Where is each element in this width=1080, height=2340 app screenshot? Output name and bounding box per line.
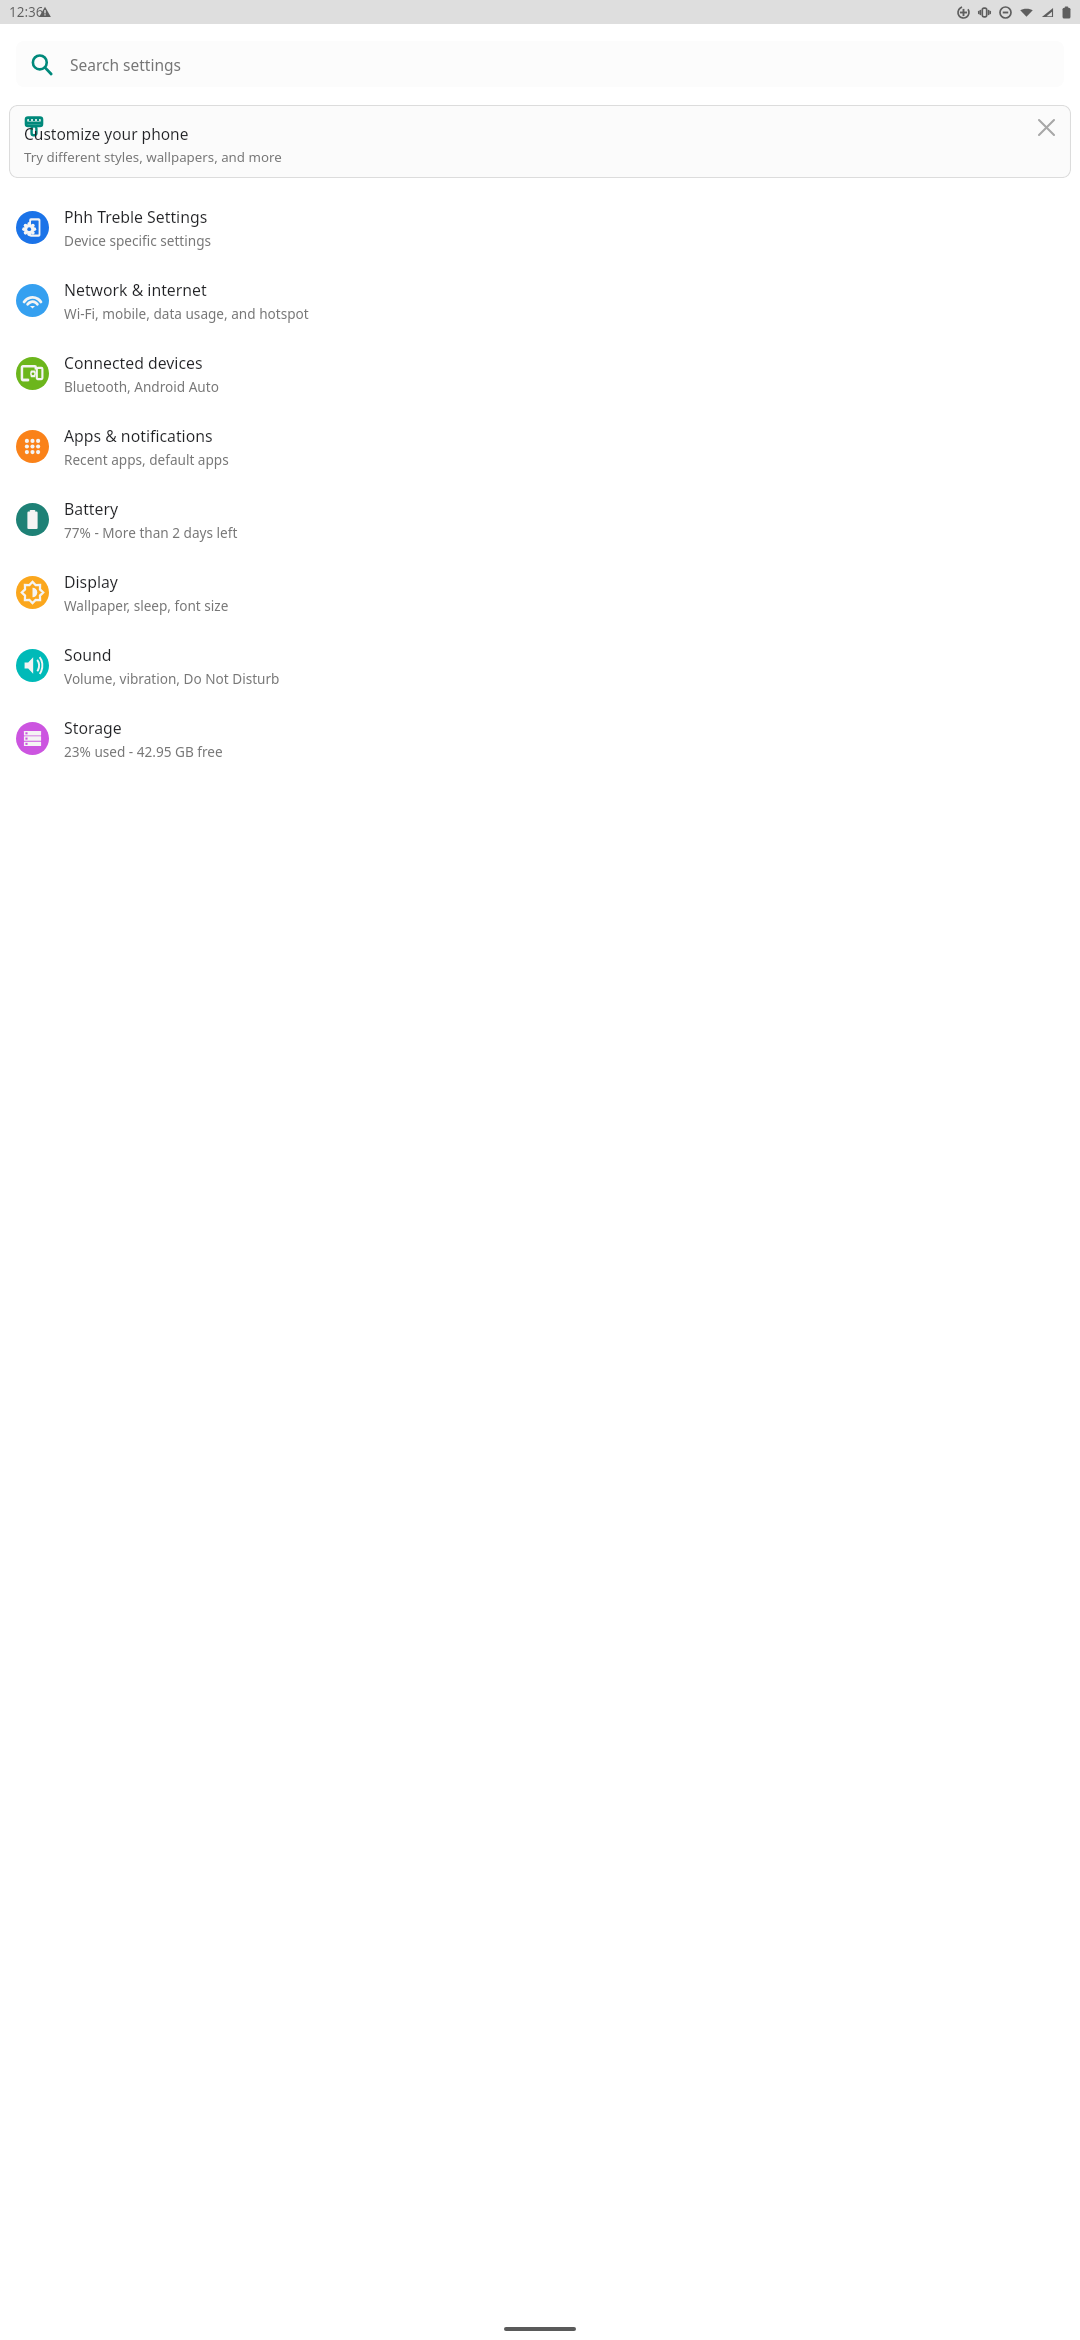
staticText: Volume, vibration, Do Not Disturb — [64, 669, 280, 688]
staticText: Sound — [64, 644, 112, 666]
button[interactable]: Dismiss suggestion — [9, 105, 1071, 178]
staticText: Search settings — [70, 54, 181, 75]
button[interactable]: Search settings — [16, 41, 1064, 87]
staticText: Try different styles, wallpapers, and mo… — [24, 148, 282, 166]
staticText: 12:36 — [9, 3, 44, 21]
button[interactable]: Phh Treble Settings — [0, 191, 1080, 264]
staticText: 23% used - 42.95 GB free — [64, 742, 223, 761]
staticText: Wallpaper, sleep, font size — [64, 596, 229, 615]
button[interactable]: Network & internet — [0, 264, 1080, 337]
staticText: Display — [64, 571, 118, 593]
button[interactable]: Display — [0, 556, 1080, 629]
staticText: Bluetooth, Android Auto — [64, 377, 219, 396]
button[interactable]: Storage — [0, 702, 1080, 775]
button[interactable]: Apps & notifications — [0, 410, 1080, 483]
button[interactable]: Battery — [0, 483, 1080, 556]
staticText: Battery — [64, 498, 119, 520]
staticText: Connected devices — [64, 352, 203, 374]
staticText: Phh Treble Settings — [64, 206, 208, 228]
staticText: Device specific settings — [64, 231, 212, 250]
staticText: Apps & notifications — [64, 425, 213, 447]
button[interactable]: Dismiss suggestion — [1029, 110, 1063, 144]
staticText: Network & internet — [64, 279, 207, 301]
button[interactable]: Connected devices — [0, 337, 1080, 410]
button[interactable]: Sound — [0, 629, 1080, 702]
staticText: Customize your phone — [24, 123, 189, 144]
staticText: 77% - More than 2 days left — [64, 523, 238, 542]
staticText: Storage — [64, 717, 122, 739]
staticText: Recent apps, default apps — [64, 450, 229, 469]
staticText: Wi-Fi, mobile, data usage, and hotspot — [64, 304, 309, 323]
